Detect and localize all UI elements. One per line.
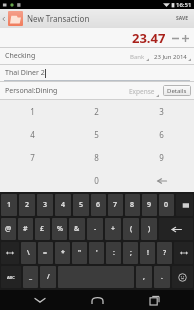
button[interactable]: Hide keyboard [29,290,51,310]
button[interactable]: + [105,218,121,240]
button[interactable]: 2 [64,100,129,123]
staticText: Thai Diner 2 [5,68,45,78]
button[interactable]: 5 [73,194,89,216]
button[interactable]: 4 [0,123,64,146]
button[interactable]: 3 [129,100,194,123]
staticText: 2 [94,106,99,117]
button[interactable]: 1 [0,100,64,123]
staticText: 6 [96,200,101,210]
button[interactable]: ? [157,242,172,264]
staticText: 2 [25,200,30,210]
button[interactable]: ; [123,242,138,264]
staticText: 16:51 [176,1,192,9]
button[interactable]: : [106,242,121,264]
button[interactable]: Expense [129,82,159,99]
button[interactable]: ) [141,218,157,240]
button[interactable]: 1 [1,194,17,216]
button[interactable]: SAVE [171,9,194,28]
button[interactable]: 4 [55,194,71,216]
button[interactable]: = [38,242,53,264]
staticText: # [23,224,28,234]
button[interactable]: ( [123,218,139,240]
staticText: Details [167,87,187,95]
staticText: 8 [94,152,99,163]
staticText: 7 [30,152,35,163]
button[interactable]: _ [23,266,38,288]
button[interactable]: " [72,242,87,264]
staticText: 4 [61,200,66,210]
staticText: 23 Jun 2014 [154,53,187,61]
button[interactable]: 23 Jun 2014 [154,48,194,64]
button[interactable]: 9 [142,194,157,216]
button[interactable]: Letters [1,266,21,288]
staticText: \ [27,248,30,258]
staticText: 5 [94,129,99,140]
button[interactable]: Negative [171,34,180,43]
button[interactable]: 0 [159,194,174,216]
staticText: Checking [5,51,36,61]
staticText: ? [163,248,167,258]
button[interactable]: More symbols [1,242,19,264]
staticText: 1 [30,106,35,117]
button[interactable]: Personal:Dining [0,82,129,99]
button[interactable]: Checking [0,48,128,64]
staticText: * [61,248,65,258]
staticText: 3 [43,200,48,210]
staticText: ' [96,248,98,258]
button[interactable]: , [136,266,152,288]
button[interactable]: / [40,266,56,288]
staticText: 0 [94,175,99,186]
staticText: + [111,224,116,234]
button[interactable]: 8 [125,194,140,216]
staticText: ; [130,248,132,258]
button[interactable]: 3 [37,194,53,216]
staticText: Personal:Dining [5,86,58,96]
button[interactable]: 7 [108,194,123,216]
button[interactable]: 2 [19,194,35,216]
staticText: 7 [113,200,118,210]
button[interactable]: 0 [64,169,129,192]
button[interactable]: Home [86,290,108,310]
staticText: SAVE [176,15,189,22]
button[interactable]: Emoji [172,266,193,288]
button[interactable]: & [69,218,85,240]
staticText: : [113,248,115,258]
button[interactable]: Delete [176,194,193,216]
button[interactable]: £ [35,218,50,240]
button[interactable]: Enter [159,218,193,240]
button[interactable]: * [55,242,70,264]
button[interactable]: . [154,266,170,288]
staticText: 9 [159,152,164,163]
button[interactable]: % [52,218,67,240]
button[interactable]: 5 [64,123,129,146]
staticText: Expense [129,87,155,96]
staticText: 3 [159,106,164,117]
staticText: % [57,224,63,234]
button[interactable]: \ [21,242,36,264]
button[interactable]: - [87,218,103,240]
button[interactable]: Recent apps [143,290,165,310]
button[interactable]: 9 [129,146,194,169]
button[interactable]: 7 [0,146,64,169]
button[interactable]: Positive [181,34,190,43]
button[interactable]: More symbols [174,242,193,264]
staticText: 0 [164,200,169,210]
button[interactable]: 6 [129,123,194,146]
button[interactable]: @ [1,218,16,240]
button[interactable]: ! [140,242,155,264]
button[interactable]: # [18,218,33,240]
button[interactable]: ' [89,242,104,264]
button[interactable]: Up [0,9,8,28]
button[interactable]: 8 [64,146,129,169]
staticText: = [43,248,48,258]
staticText: . [161,272,163,282]
button[interactable]: Backspace [129,169,194,192]
button[interactable]: Details [163,85,191,96]
button[interactable]: Bank [128,48,151,64]
staticText: ) [148,224,151,234]
button[interactable]: 6 [91,194,106,216]
staticText: 4 [30,129,35,140]
staticText: ( [130,224,133,234]
staticText: ! [147,248,149,258]
